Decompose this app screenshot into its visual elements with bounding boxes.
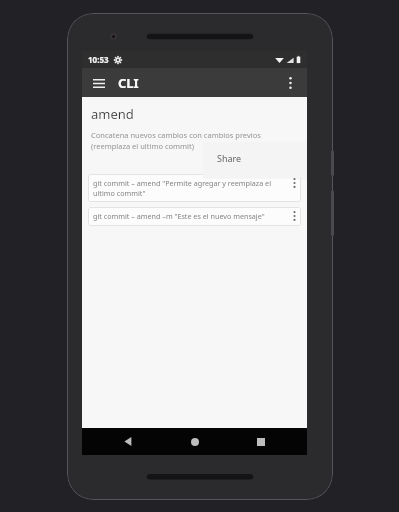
button[interactable]: Recent apps — [241, 428, 281, 455]
staticText: CLI — [118, 74, 139, 92]
staticText: Share — [217, 152, 242, 164]
button[interactable]: Home — [175, 428, 215, 455]
button[interactable]: Open navigation drawer — [86, 70, 112, 96]
button[interactable]: Command options — [287, 207, 301, 225]
staticText: 10:53 — [88, 54, 109, 65]
button[interactable]: git commit – amend "Permite agregar y re… — [88, 174, 301, 202]
button[interactable]: More options — [277, 70, 303, 96]
staticText: Concatena nuevos cambios con cambios pre… — [91, 130, 297, 151]
button[interactable]: Command options — [287, 174, 301, 192]
button[interactable]: Back — [108, 428, 148, 455]
staticText: git commit – amend "Permite agregar y re… — [93, 178, 285, 198]
staticText: amend — [91, 105, 134, 123]
staticText: git commit – amend –m "Este es el nuevo … — [93, 211, 265, 221]
button[interactable]: git commit – amend –m "Este es el nuevo … — [88, 207, 301, 226]
button[interactable]: Share — [203, 142, 307, 178]
